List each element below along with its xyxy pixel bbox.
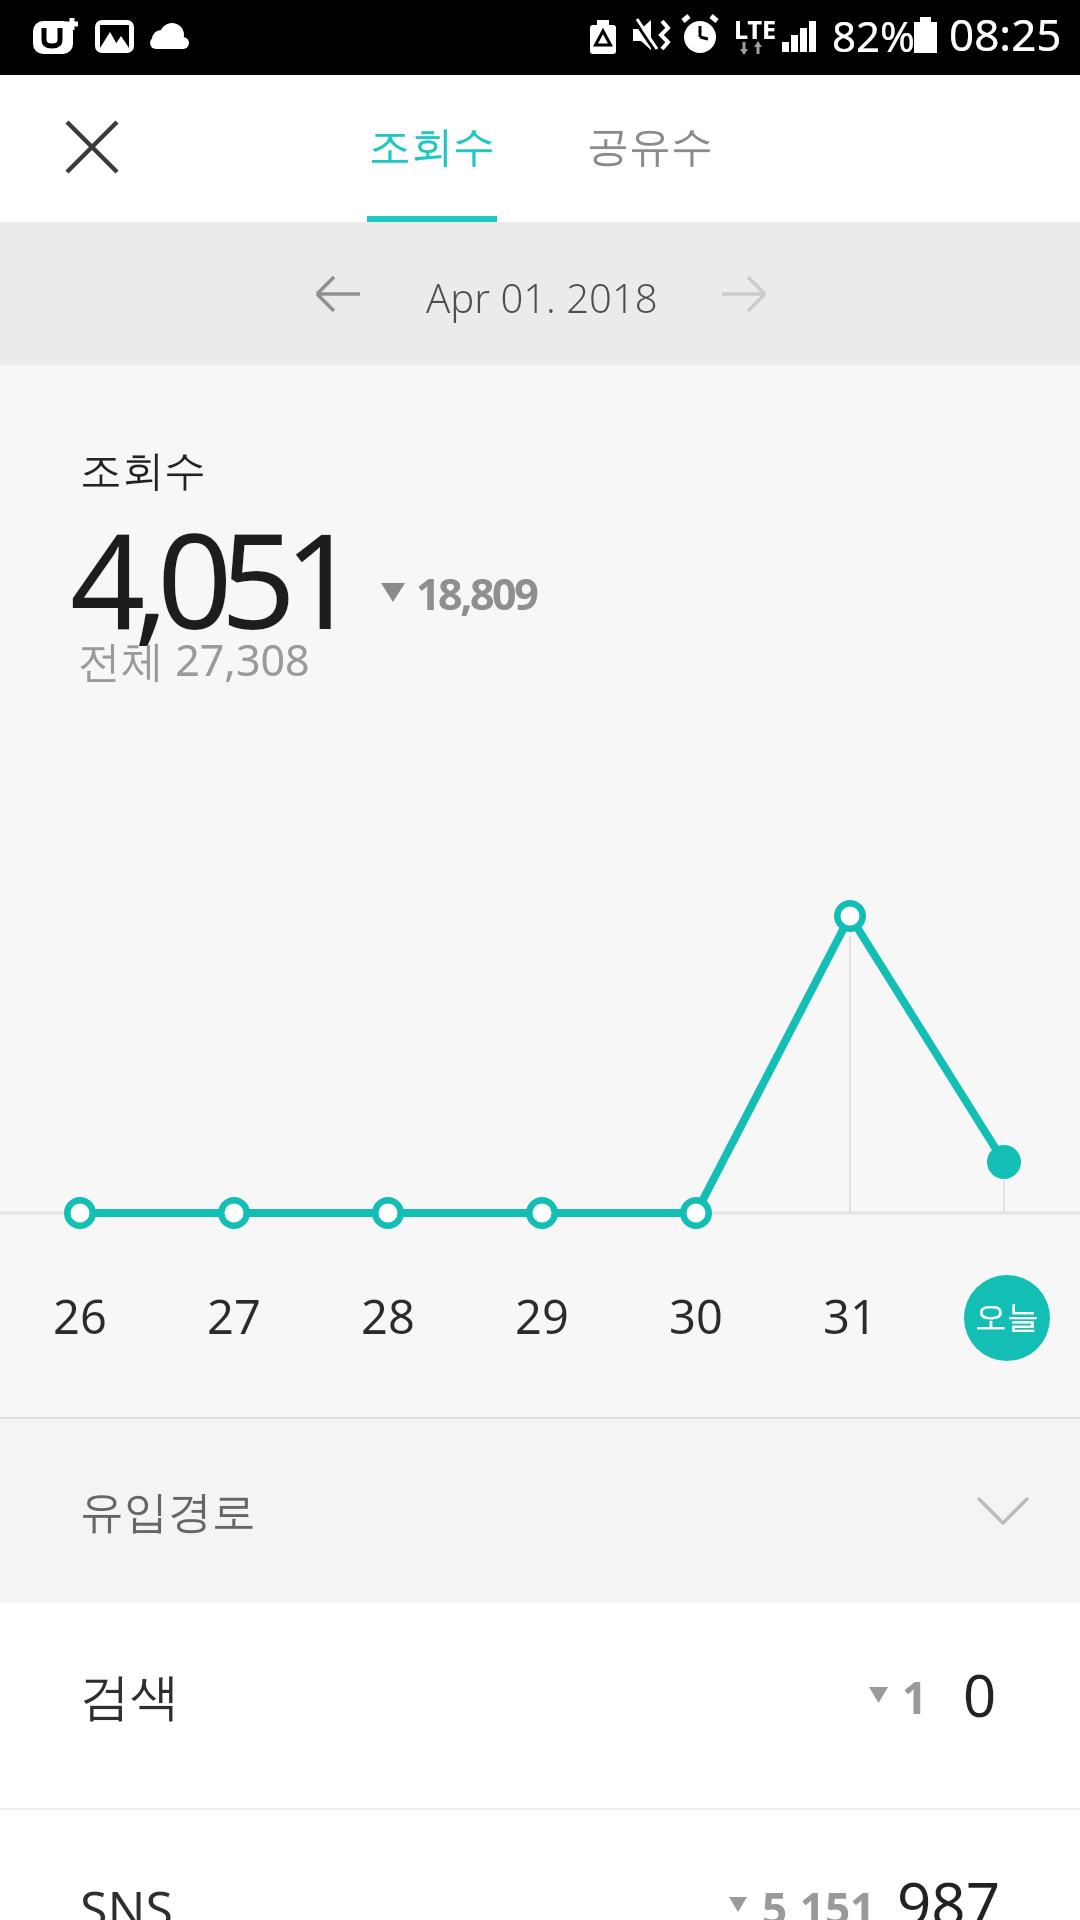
button[interactable] [565, 90, 740, 210]
staticText: 조회수 [80, 445, 206, 498]
staticText: 27 [207, 1284, 261, 1348]
staticText: 공유수 [587, 121, 713, 174]
staticText: LTE [734, 12, 776, 46]
staticText: 전체 27,308 [78, 630, 310, 689]
staticText: 유입경로 [80, 1485, 256, 1540]
staticText: 987 [897, 1862, 1000, 1920]
button[interactable] [40, 95, 145, 200]
staticText: 18,809 [416, 564, 537, 623]
button[interactable] [0, 1603, 1080, 1808]
staticText: Apr 01. 2018 [426, 270, 658, 324]
staticText: 5,151 [762, 1878, 876, 1920]
staticText: 0 [963, 1655, 997, 1734]
staticText: 31 [823, 1284, 877, 1348]
staticText: 82% [832, 7, 915, 64]
staticText: 30 [669, 1284, 723, 1348]
button[interactable] [710, 260, 785, 330]
staticText: 28 [361, 1284, 415, 1348]
staticText: SNS [80, 1874, 173, 1920]
staticText: 4,051 [70, 488, 348, 668]
staticText: 1 [902, 1667, 928, 1727]
button[interactable] [300, 260, 375, 330]
staticText: 26 [53, 1284, 107, 1348]
staticText: 08:25 [949, 4, 1062, 64]
button[interactable] [0, 1419, 1080, 1603]
button[interactable] [0, 1810, 1080, 1920]
staticText: 검색 [80, 1666, 180, 1729]
button[interactable] [964, 1275, 1050, 1361]
button[interactable] [345, 90, 520, 210]
staticText: 조회수 [369, 121, 495, 174]
staticText: 29 [515, 1284, 569, 1348]
staticText: 오늘 [975, 1297, 1039, 1337]
